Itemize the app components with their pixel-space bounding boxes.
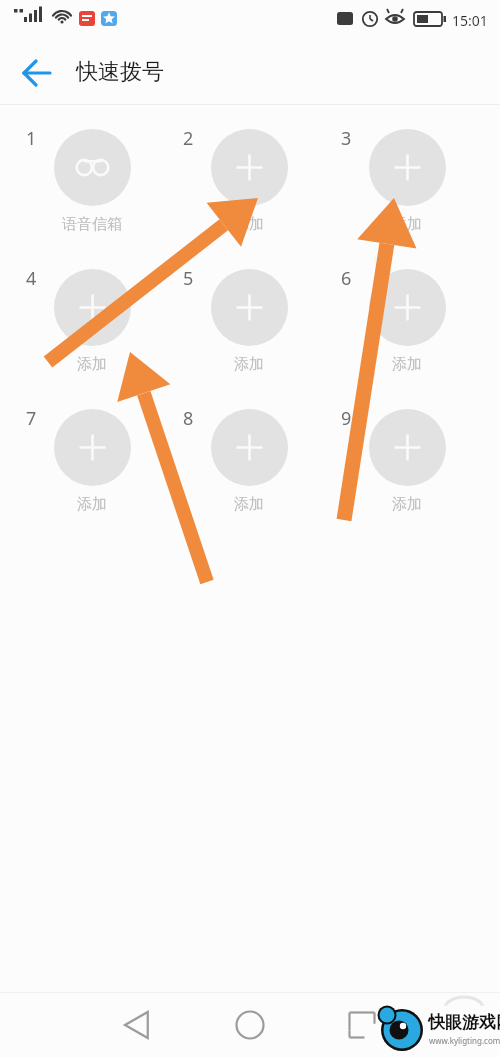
staticText: 6 [341,266,352,291]
button[interactable]: 添加 [352,398,462,516]
button[interactable]: Back [14,49,62,97]
button[interactable]: 添加 [194,118,304,236]
staticText: 添加 [392,215,422,234]
button[interactable]: 添加 [37,398,147,516]
staticText: 9 [341,406,352,431]
button[interactable]: 添加 [194,398,304,516]
button[interactable]: 语音信箱 [37,118,147,236]
staticText: 1 [26,126,37,151]
staticText: 15:01 [452,11,488,30]
staticText: 语音信箱 [62,215,122,234]
button[interactable]: 添加 [352,258,462,376]
button[interactable]: Recents [334,997,390,1053]
staticText: 快速拨号 [76,58,164,86]
staticText: 快眼游戏网 [428,1012,500,1033]
button[interactable]: Back [110,997,166,1053]
staticText: 添加 [77,355,107,374]
staticText: 3 [341,126,352,151]
staticText: 添加 [234,495,264,514]
staticText: 5 [183,266,194,291]
button[interactable]: Home [222,997,278,1053]
button[interactable]: 添加 [352,118,462,236]
button[interactable]: 添加 [194,258,304,376]
staticText: 7 [26,406,37,431]
staticText: 4 [26,266,37,291]
button[interactable]: 添加 [37,258,147,376]
staticText: 添加 [234,355,264,374]
staticText: 添加 [392,355,422,374]
staticText: 添加 [392,495,422,514]
staticText: 添加 [77,495,107,514]
staticText: 添加 [234,215,264,234]
staticText: 8 [183,406,194,431]
staticText: 2 [183,126,194,151]
staticText: www.kyligting.com [429,1035,500,1046]
